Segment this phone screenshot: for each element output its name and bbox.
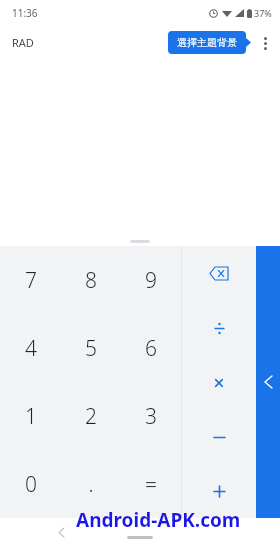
button[interactable]: 選擇主題背景 — [168, 31, 246, 54]
button[interactable]: plus — [182, 464, 256, 518]
button[interactable]: 2 — [61, 382, 121, 450]
staticText: 11:36 — [12, 6, 38, 20]
button[interactable]: multiply — [182, 356, 256, 410]
button[interactable]: Home — [127, 536, 153, 539]
staticText: 2 — [85, 402, 97, 431]
staticText: 選擇主題背景 — [177, 36, 237, 49]
staticText: = — [145, 470, 157, 499]
staticText: 8 — [85, 266, 97, 295]
button[interactable]: 7 — [0, 246, 61, 314]
staticText: RAD — [12, 35, 34, 50]
button[interactable]: minus — [182, 410, 256, 464]
button[interactable]: 5 — [61, 314, 121, 382]
button[interactable]: 3 — [121, 382, 181, 450]
staticText: 7 — [25, 266, 37, 295]
button[interactable]: 0 — [0, 450, 61, 518]
staticText: 4 — [25, 334, 37, 363]
staticText: 1 — [25, 402, 37, 431]
staticText: 3 — [145, 402, 157, 431]
button[interactable]: More options — [254, 32, 276, 54]
button[interactable]: Back — [52, 523, 70, 541]
button[interactable]: . — [61, 450, 121, 518]
button[interactable]: Expand panel — [256, 246, 280, 518]
button[interactable]: divide — [182, 301, 256, 356]
button[interactable]: 9 — [121, 246, 181, 314]
staticText: 37% — [254, 7, 272, 19]
button[interactable]: 6 — [121, 314, 181, 382]
staticText: . — [88, 470, 94, 499]
staticText: Android-APK.com — [76, 507, 241, 533]
staticText: 5 — [85, 334, 97, 363]
button[interactable]: = — [121, 450, 181, 518]
staticText: 6 — [145, 334, 157, 363]
staticText: 0 — [25, 470, 37, 499]
button[interactable]: 1 — [0, 382, 61, 450]
button[interactable]: 8 — [61, 246, 121, 314]
button[interactable]: RAD — [12, 35, 34, 50]
button[interactable]: 4 — [0, 314, 61, 382]
staticText: 9 — [145, 266, 157, 295]
button[interactable]: backspace — [182, 246, 256, 301]
